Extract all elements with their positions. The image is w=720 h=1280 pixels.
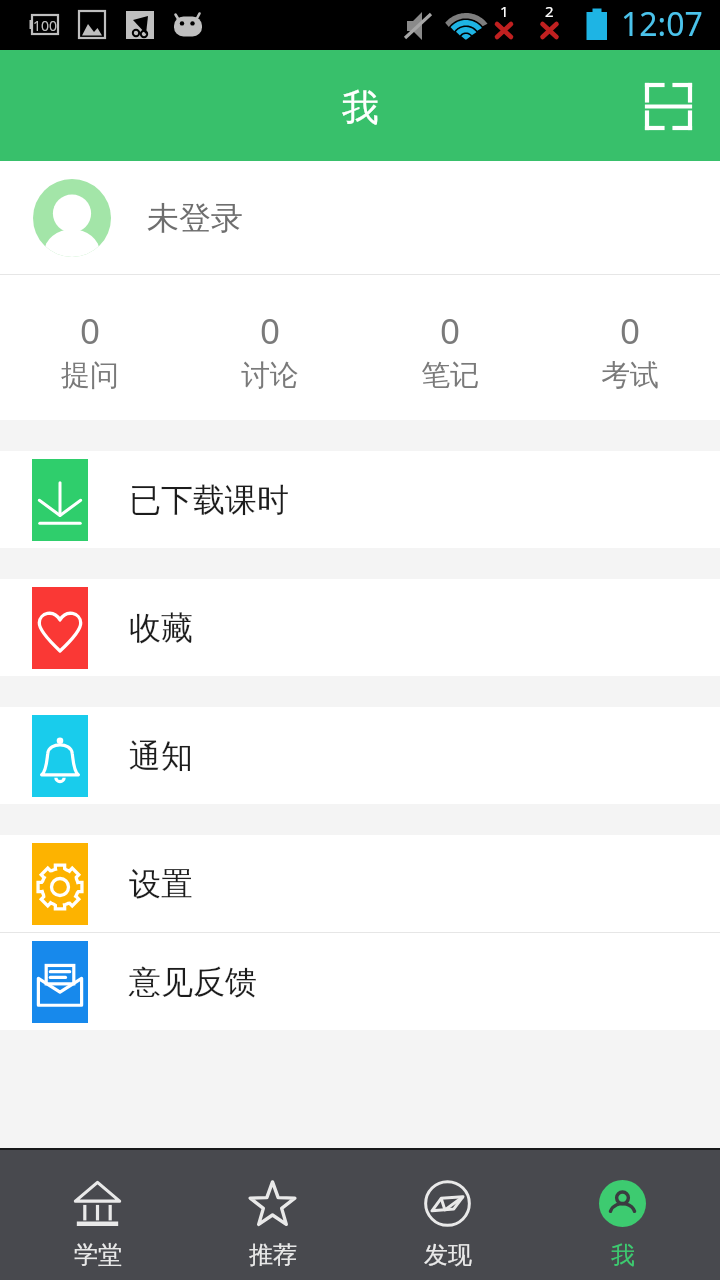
button[interactable]: Scan QR code <box>630 68 706 144</box>
button[interactable]: 0 <box>0 275 180 420</box>
staticText: 收藏 <box>129 608 193 648</box>
staticText: 0 <box>260 307 281 355</box>
staticText: 0 <box>80 307 101 355</box>
staticText: 提问 <box>61 357 119 394</box>
button[interactable]: 学堂 <box>10 1150 185 1280</box>
staticText: 学堂 <box>74 1240 122 1270</box>
button[interactable]: 通知 <box>0 707 720 804</box>
button[interactable]: 设置 <box>0 835 720 932</box>
button[interactable]: 意见反馈 <box>0 933 720 1030</box>
staticText: 未登录 <box>147 198 243 238</box>
staticText: 1 <box>500 1 509 21</box>
button[interactable]: 0 <box>360 275 540 420</box>
staticText: 讨论 <box>241 357 299 394</box>
staticText: 推荐 <box>249 1240 297 1270</box>
staticText: 我 <box>611 1240 635 1270</box>
staticText: 设置 <box>129 864 193 904</box>
staticText: 100 <box>33 16 58 35</box>
staticText: 发现 <box>424 1240 472 1270</box>
button[interactable]: 收藏 <box>0 579 720 676</box>
staticText: 12:07 <box>621 2 703 46</box>
staticText: 0 <box>620 307 641 355</box>
staticText: 已下载课时 <box>129 480 289 520</box>
button[interactable]: 发现 <box>360 1150 535 1280</box>
staticText: 0 <box>440 307 461 355</box>
staticText: 意见反馈 <box>129 962 257 1002</box>
button[interactable]: 未登录 <box>0 161 720 274</box>
button[interactable]: 已下载课时 <box>0 451 720 548</box>
staticText: 2 <box>545 1 554 21</box>
button[interactable]: 0 <box>540 275 720 420</box>
staticText: 笔记 <box>421 357 479 394</box>
staticText: 我 <box>342 84 379 131</box>
staticText: 考试 <box>601 357 659 394</box>
staticText: 通知 <box>129 736 193 776</box>
button[interactable]: 推荐 <box>185 1150 360 1280</box>
button[interactable]: 我 <box>535 1150 710 1280</box>
button[interactable]: 0 <box>180 275 360 420</box>
